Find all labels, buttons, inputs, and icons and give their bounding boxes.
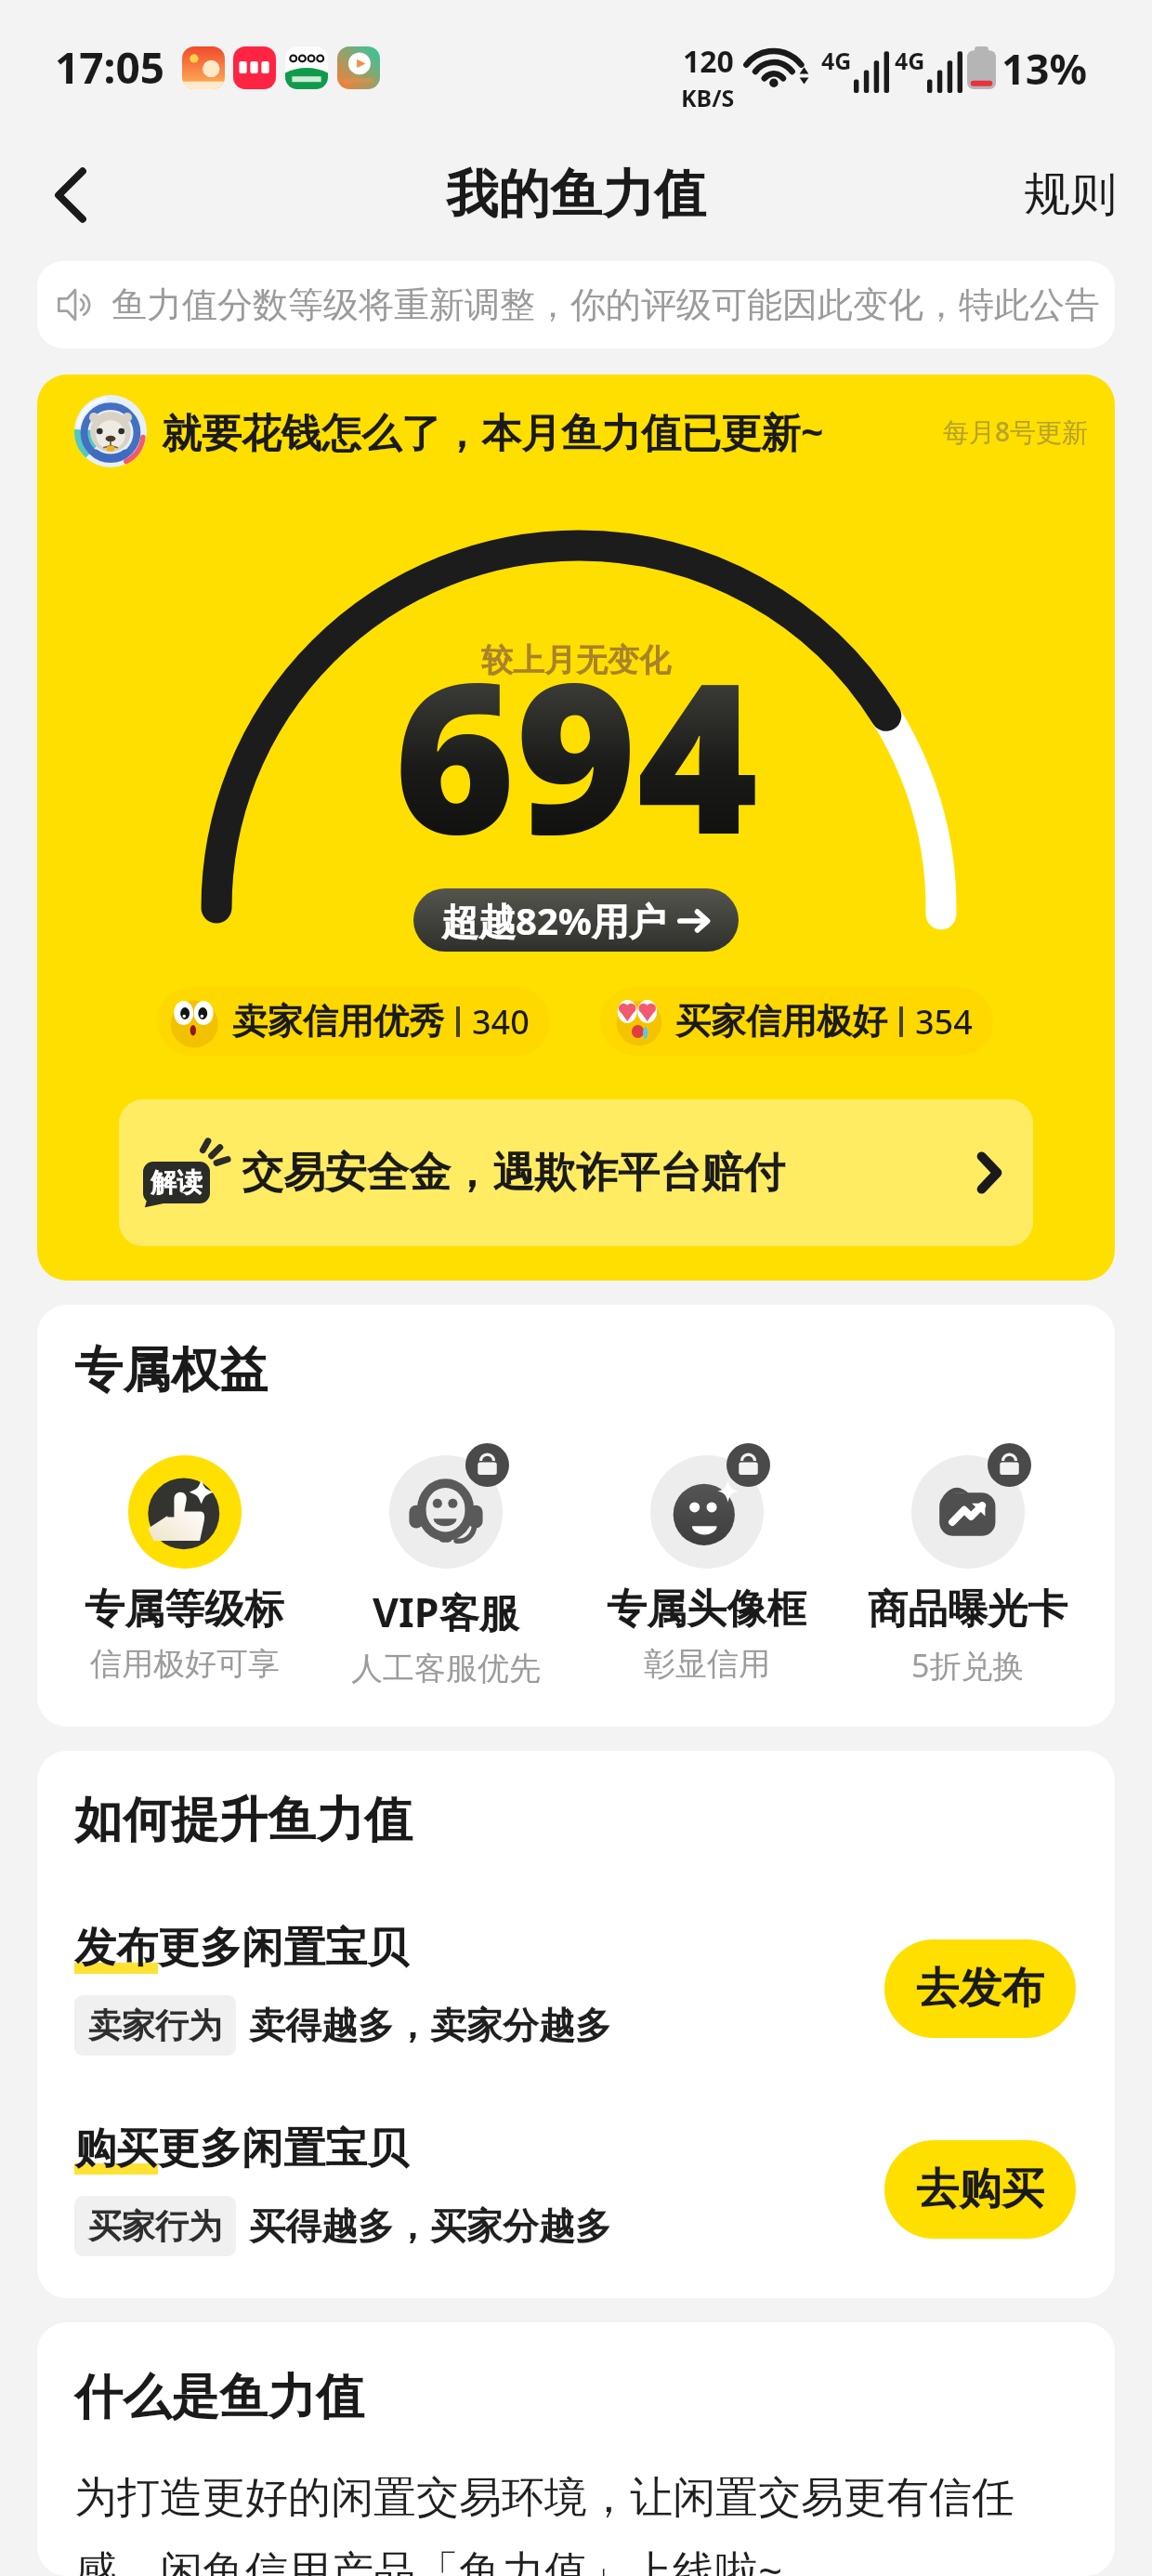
staticText: 专属权益 [74,1340,268,1401]
staticText: 340 [472,999,530,1045]
staticText: 卖得越多，卖家分越多 [249,2003,611,2048]
staticText: 如何提升鱼力值 [74,1790,412,1851]
button[interactable]: 专属等级标 [54,1442,315,1684]
staticText: 商品曝光卡 [868,1584,1067,1635]
button[interactable]: 鱼力值分数等级将重新调整，你的评级可能因此变化，特此公告 [37,261,1115,348]
button[interactable]: 解读 [119,1099,1033,1246]
staticText: VIP客服 [373,1584,519,1639]
staticText: 卖家信用优秀 [232,999,444,1044]
button[interactable]: 商品曝光卡 [837,1442,1098,1687]
staticText: KB/S [681,82,735,113]
staticText: 鱼力值分数等级将重新调整，你的评级可能因此变化，特此公告 [111,283,1100,327]
staticText: 就要花钱怎么了，本月鱼力值已更新~ [162,404,824,459]
staticText: 为打造更好的闲置交易环境，让闲置交易更有信任感，闲鱼信用产品「鱼力值」上线啦~ [74,2471,1078,2576]
button[interactable]: Back [26,151,115,240]
staticText: 人工客服优先 [351,1649,541,1689]
staticText: 发布 [74,1922,158,1975]
button[interactable]: 超越82%用户 [413,888,739,952]
staticText: 超越82%用户 [441,895,666,946]
staticText: 354 [915,999,973,1045]
button[interactable]: 买家信用极好 [600,987,993,1056]
staticText: 规则 [1024,165,1117,224]
staticText: 交易安全金，遇欺诈平台赔付 [242,1147,785,1200]
staticText: 我的鱼力值 [446,162,706,228]
staticText: 买家行为 [88,2205,222,2247]
staticText: 去购买 [916,2162,1044,2216]
staticText: 卖家行为 [88,2004,222,2046]
staticText: 更多闲置宝贝 [158,2123,409,2175]
staticText: 专属头像框 [607,1584,806,1635]
staticText: 较上月无变化 [481,640,671,680]
staticText: 信用极好可享 [90,1644,280,1684]
staticText: 694 [394,612,759,895]
button[interactable]: 规则 [1015,158,1126,231]
staticText: 4G [821,45,852,76]
button[interactable]: 去发布 [884,1939,1076,2038]
staticText: 购买 [74,2123,158,2175]
staticText: 买家信用极好 [675,999,887,1044]
staticText: 17:05 [55,38,165,97]
staticText: 120 [683,41,734,82]
staticText: 5折兑换 [911,1644,1025,1687]
staticText: 解读 [151,1166,203,1199]
staticText: 每月8号更新 [943,414,1089,449]
staticText: 更多闲置宝贝 [158,1922,409,1975]
staticText: 去发布 [916,1962,1044,2016]
staticText: 买得越多，买家分越多 [249,2203,611,2249]
button[interactable]: 卖家信用优秀 [157,987,550,1056]
staticText: 彰显信用 [644,1644,770,1684]
button[interactable]: 专属头像框 [576,1442,837,1684]
staticText: 4G [895,45,925,76]
staticText: 13% [1001,40,1088,97]
staticText: 什么是鱼力值 [74,2367,364,2428]
button[interactable]: VIP客服 [315,1442,576,1689]
staticText: 专属等级标 [85,1584,284,1635]
button[interactable]: 去购买 [884,2140,1076,2239]
